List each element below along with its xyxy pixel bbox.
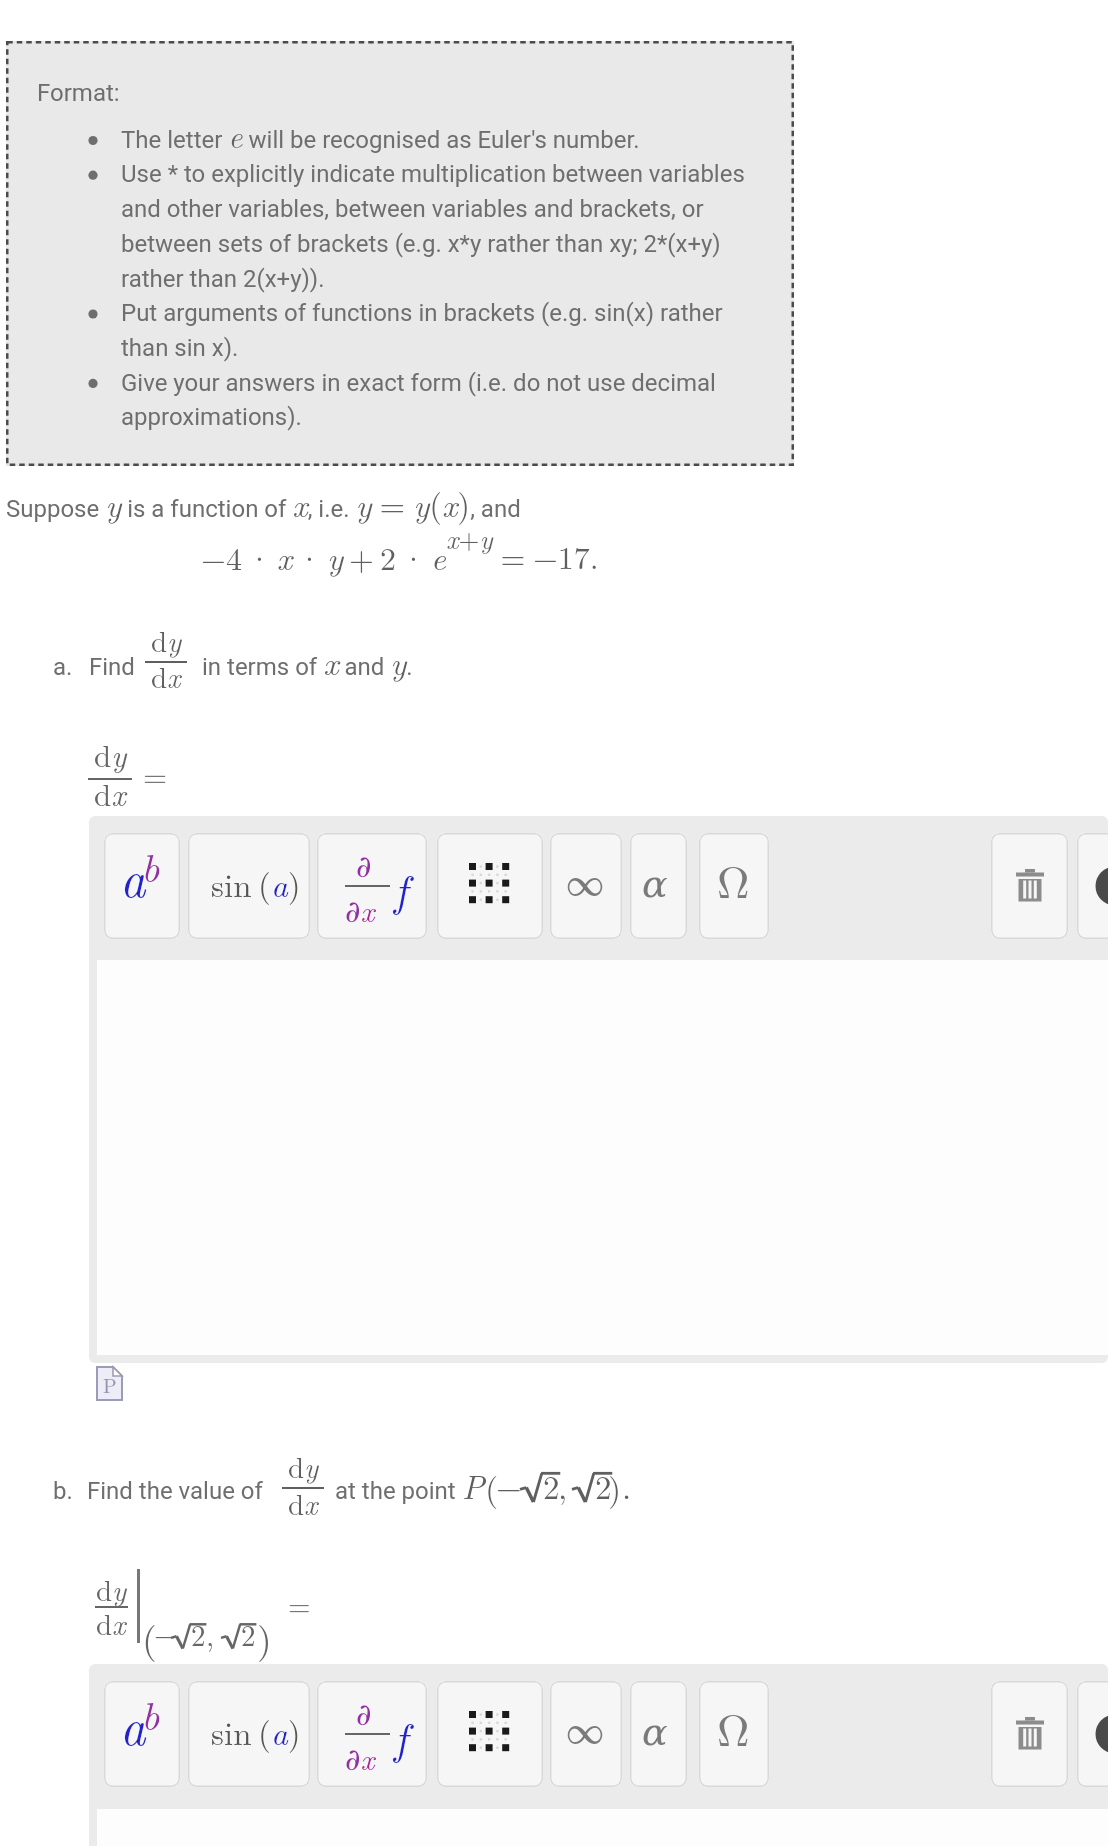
staticText: ( xyxy=(142,1610,157,1664)
button[interactable]: α xyxy=(630,1681,687,1787)
staticText: ) xyxy=(608,1463,622,1511)
staticText: P xyxy=(103,1370,117,1398)
staticText: dx xyxy=(94,771,126,815)
staticText: b xyxy=(141,837,160,894)
staticText: sin (a) xyxy=(211,860,301,907)
staticText: sin (a) xyxy=(211,1708,301,1755)
staticText: The letter e will be recognised as Euler… xyxy=(121,113,640,157)
staticText: a xyxy=(120,841,146,912)
staticText: dx xyxy=(151,655,181,696)
button[interactable]: sin (a) xyxy=(188,833,310,939)
staticText: Find the value of xyxy=(87,1477,263,1505)
staticText: dy xyxy=(96,1568,127,1609)
staticText: b. xyxy=(53,1477,73,1505)
button[interactable]: α xyxy=(630,833,687,939)
staticText: ∂ xyxy=(356,1697,372,1732)
button[interactable]: Ω xyxy=(699,833,769,939)
staticText: ∂x xyxy=(345,1736,375,1778)
staticText: Format: xyxy=(37,79,120,107)
staticText: f xyxy=(394,856,408,918)
staticText: approximations). xyxy=(121,403,302,431)
staticText: a. xyxy=(53,653,73,681)
button[interactable]: ∞ xyxy=(550,1681,622,1787)
staticText: = −17. xyxy=(493,533,599,578)
button[interactable]: ∂ xyxy=(317,833,427,939)
staticText: between sets of brackets (e.g. x*y rathe… xyxy=(121,230,721,258)
button[interactable]: ∞ xyxy=(550,833,622,939)
staticText: 2 xyxy=(241,1613,256,1654)
staticText: x+y xyxy=(446,519,493,557)
staticText: α xyxy=(642,1710,668,1754)
staticText: 2 xyxy=(191,1613,206,1654)
staticText: b xyxy=(141,1685,160,1742)
staticText: − xyxy=(496,1462,522,1509)
staticText: 2 xyxy=(595,1462,612,1509)
button[interactable]: sin (a) xyxy=(188,1681,310,1787)
staticText: at the point xyxy=(335,1477,456,1505)
staticText: ) xyxy=(257,1610,272,1664)
button[interactable] xyxy=(991,1681,1068,1787)
button[interactable]: a xyxy=(104,1681,180,1787)
staticText: Find xyxy=(89,653,135,681)
button[interactable]: Ω xyxy=(699,1681,769,1787)
staticText: dy xyxy=(288,1445,319,1486)
staticText: dy xyxy=(151,619,182,660)
staticText: = xyxy=(143,752,168,796)
staticText: P xyxy=(462,1462,485,1509)
staticText: Ω xyxy=(717,1695,750,1759)
staticText: a xyxy=(120,1689,146,1760)
button[interactable] xyxy=(991,833,1068,939)
staticText: −4 · x · y + 2 · e xyxy=(201,533,446,580)
staticText: , xyxy=(558,1462,568,1509)
staticText: dx xyxy=(96,1602,126,1643)
staticText: Use * to explicitly indicate multiplicat… xyxy=(121,160,745,188)
staticText: ( xyxy=(485,1463,499,1511)
staticText: than sin x). xyxy=(121,334,239,362)
button[interactable] xyxy=(437,833,543,939)
staticText: = xyxy=(288,1583,311,1624)
staticText: Give your answers in exact form (i.e. do… xyxy=(121,369,716,397)
staticText: , xyxy=(206,1613,215,1654)
staticText: dx xyxy=(288,1482,318,1523)
staticText: ∂x xyxy=(345,888,375,930)
staticText: Ω xyxy=(717,847,750,911)
staticText: in terms of x and y. xyxy=(202,638,413,685)
button[interactable]: P xyxy=(96,1366,124,1402)
staticText: α xyxy=(642,862,668,906)
staticText: 2 xyxy=(543,1462,560,1509)
button[interactable] xyxy=(437,1681,543,1787)
staticText: Put arguments of functions in brackets (… xyxy=(121,299,723,327)
staticText: dy xyxy=(94,732,127,776)
staticText: . xyxy=(622,1462,632,1509)
button[interactable]: ∂ xyxy=(317,1681,427,1787)
staticText: ∂ xyxy=(356,849,372,884)
button[interactable] xyxy=(1077,833,1108,939)
staticText: ∞ xyxy=(566,853,605,907)
button[interactable]: a xyxy=(104,833,180,939)
button[interactable] xyxy=(1077,1681,1108,1787)
staticText: and other variables, between variables a… xyxy=(121,195,704,223)
staticText: Suppose y is a function of x, i.e. y = y… xyxy=(6,480,521,527)
staticText: f xyxy=(394,1704,408,1766)
staticText: rather than 2(x+y)). xyxy=(121,265,325,293)
staticText: − xyxy=(154,1612,177,1653)
staticText: ∞ xyxy=(566,1701,605,1755)
